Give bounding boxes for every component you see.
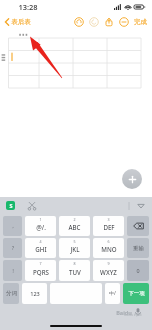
- button[interactable]: 分词: [3, 283, 19, 304]
- staticText: Baidu: [116, 309, 132, 316]
- staticText: 分词: [6, 290, 17, 297]
- staticText: ?: [12, 245, 14, 251]
- staticText: Baidu input: [124, 313, 142, 317]
- button[interactable]: 123: [22, 283, 47, 304]
- button[interactable]: 完成: [134, 18, 152, 26]
- staticText: 9: [107, 261, 110, 266]
- button[interactable]: 4: [25, 238, 56, 258]
- staticText: MNO: [101, 245, 117, 253]
- button[interactable]: 下一项: [123, 283, 149, 304]
- button[interactable]: 2: [59, 216, 90, 236]
- button[interactable]: 剪贴板: [27, 201, 37, 211]
- staticText: 完成: [134, 18, 147, 26]
- staticText: 6: [107, 239, 110, 244]
- staticText: ABC: [68, 223, 81, 231]
- staticText: 8: [73, 261, 76, 266]
- staticText: ,: [12, 223, 14, 229]
- button[interactable]: 0: [127, 260, 149, 281]
- staticText: WXYZ: [100, 268, 117, 276]
- staticText: 下一项: [128, 290, 145, 297]
- staticText: @/.: [36, 223, 46, 231]
- staticText: S: [9, 202, 13, 209]
- button[interactable]: 语音输入: [133, 307, 143, 317]
- button[interactable]: 1: [25, 216, 56, 236]
- button[interactable]: 重输: [127, 238, 149, 258]
- button[interactable]: 分享: [104, 17, 114, 27]
- staticText: DEF: [103, 223, 115, 231]
- button[interactable]: 9: [93, 260, 124, 281]
- button[interactable]: ?: [3, 238, 22, 258]
- staticText: 7: [39, 261, 42, 266]
- staticText: 1: [39, 217, 42, 222]
- button[interactable]: 添加: [122, 169, 142, 189]
- button[interactable]: 退格: [127, 216, 149, 236]
- button[interactable]: 返回: [0, 18, 33, 26]
- staticText: 4: [39, 239, 42, 244]
- button[interactable]: 7: [25, 260, 56, 281]
- staticText: 13:28: [18, 2, 38, 12]
- button[interactable]: 6: [93, 238, 124, 258]
- staticText: TUV: [69, 268, 81, 276]
- staticText: 中/: [109, 290, 116, 297]
- button[interactable]: 3: [93, 216, 124, 236]
- staticText: 0: [136, 267, 140, 274]
- button[interactable]: 重做: [89, 17, 99, 27]
- button[interactable]: 8: [59, 260, 90, 281]
- staticText: 表后表: [11, 18, 31, 26]
- staticText: GHI: [35, 245, 47, 253]
- button[interactable]: 收起键盘: [136, 201, 146, 211]
- staticText: 3: [107, 217, 110, 222]
- staticText: 5: [73, 239, 76, 244]
- staticText: 123: [30, 290, 40, 298]
- button[interactable]: 删除: [119, 17, 129, 27]
- button[interactable]: !: [3, 260, 22, 281]
- button[interactable]: 撤销: [74, 17, 84, 27]
- staticText: !: [12, 268, 14, 274]
- button[interactable]: 中/: [105, 283, 120, 304]
- button[interactable]: 输入法: [6, 201, 15, 210]
- staticText: JKL: [70, 245, 80, 253]
- staticText: 重输: [133, 245, 144, 252]
- staticText: PQRS: [33, 268, 49, 276]
- staticText: 2: [73, 217, 76, 222]
- button[interactable]: 5: [59, 238, 90, 258]
